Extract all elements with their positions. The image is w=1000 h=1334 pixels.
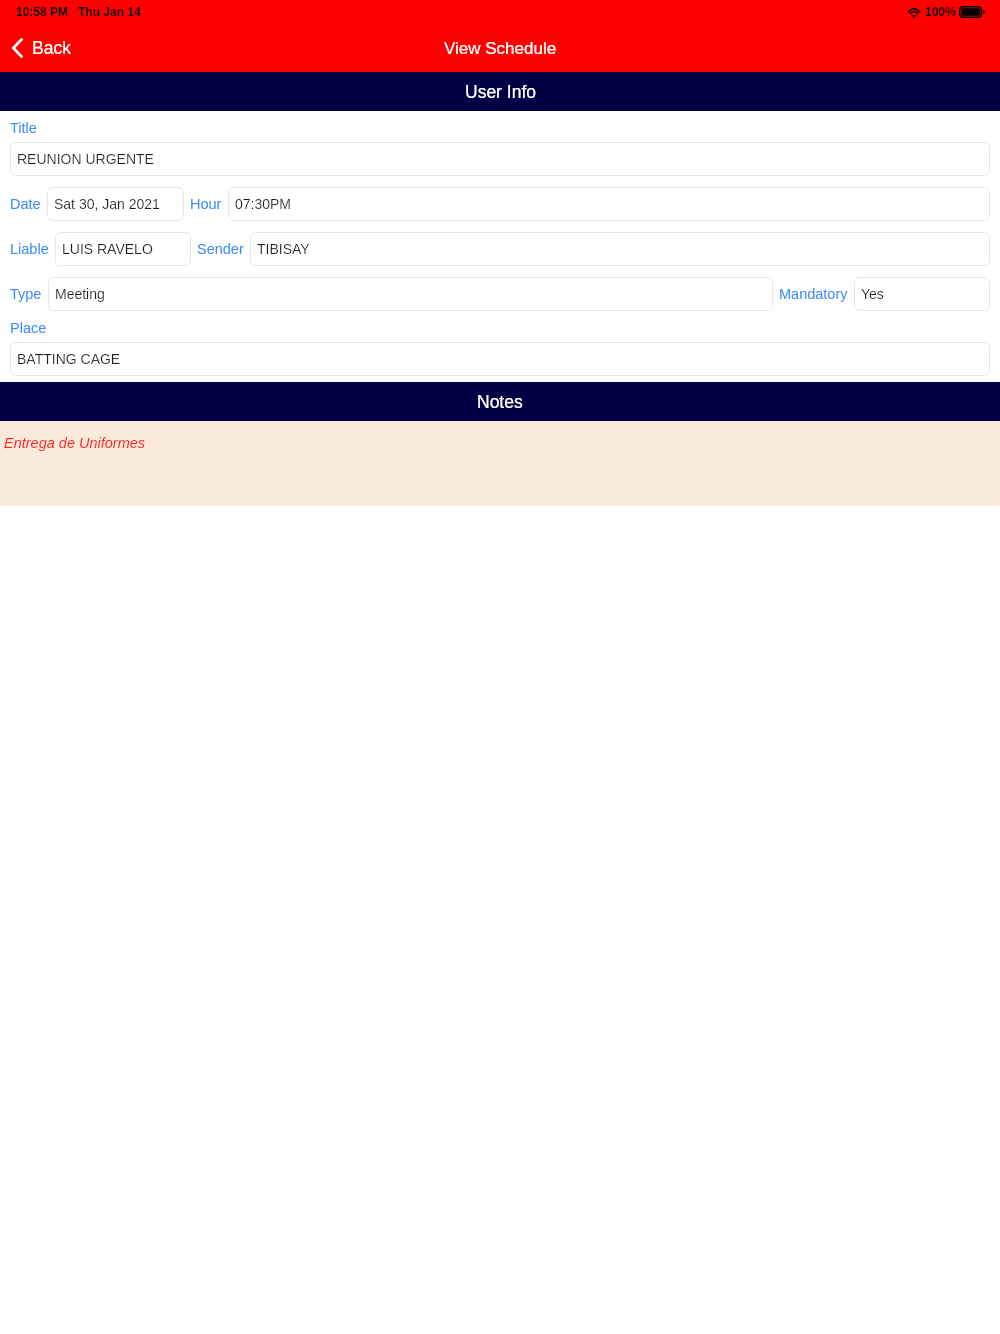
button[interactable]: Back [0,28,85,68]
staticText: Thu Jan 14 [78,5,141,18]
button[interactable]: BATTING CAGE [10,342,990,376]
staticText: 07:30PM [235,196,292,212]
staticText: Yes [861,286,884,302]
staticText: View Schedule [444,39,557,58]
staticText: TIBISAY [257,241,310,257]
staticText: Sat 30, Jan 2021 [54,196,160,212]
button[interactable]: Sat 30, Jan 2021 [47,187,184,221]
button[interactable]: User Info [0,72,1000,111]
button[interactable]: TIBISAY [250,232,990,266]
staticText: 100% [925,5,956,18]
button[interactable]: 07:30PM [228,187,990,221]
staticText: Notes [477,392,523,412]
staticText: 10:58 PM [16,5,69,18]
staticText: Hour [190,196,222,212]
other: Back [12,38,23,58]
button[interactable]: Notes [0,382,1000,421]
staticText: Type [10,286,42,302]
button[interactable]: REUNION URGENTE [10,142,990,176]
staticText: Date [10,196,41,212]
staticText: Mandatory [779,286,848,302]
staticText: Entrega de Uniformes [4,435,146,451]
staticText: REUNION URGENTE [17,151,154,167]
button[interactable]: Yes [854,277,990,311]
button[interactable]: Meeting [48,277,773,311]
button[interactable]: LUIS RAVELO [55,232,191,266]
staticText: Sender [197,241,244,257]
button[interactable]: Entrega de Uniformes [0,421,1000,506]
staticText: User Info [465,82,536,102]
staticText: Place [10,320,47,336]
staticText: Liable [10,241,49,257]
staticText: BATTING CAGE [17,351,121,367]
staticText: Meeting [55,286,105,302]
staticText: LUIS RAVELO [62,241,153,257]
staticText: Back [32,38,71,58]
staticText: Title [10,120,37,136]
